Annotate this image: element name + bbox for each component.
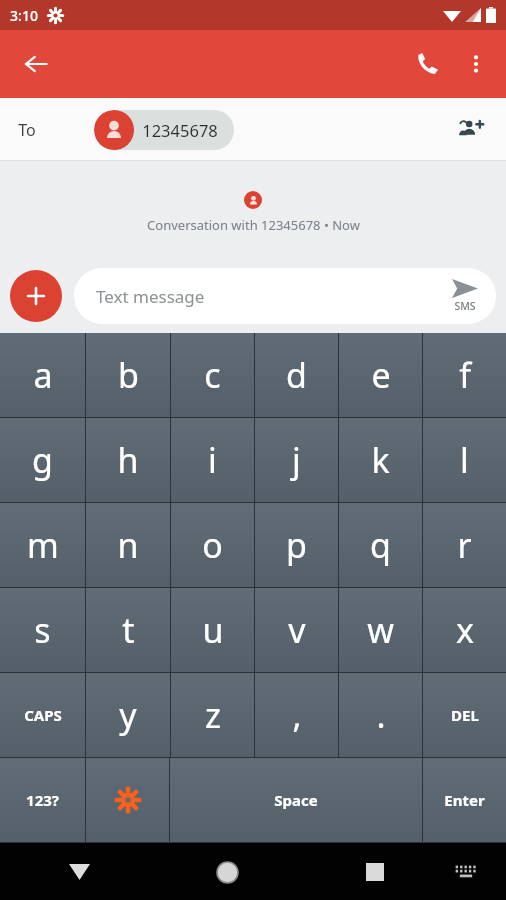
button[interactable]: .	[339, 673, 422, 757]
button[interactable]: Home	[203, 848, 251, 896]
button[interactable]: Text message	[74, 268, 496, 324]
button[interactable]: f	[423, 333, 506, 417]
staticText: f	[459, 352, 471, 398]
button[interactable]: i	[171, 418, 254, 502]
button[interactable]: u	[171, 588, 254, 672]
staticText: CAPS	[24, 705, 62, 725]
staticText: a	[33, 352, 53, 398]
staticText: i	[208, 437, 217, 483]
staticText: y	[119, 692, 137, 738]
button[interactable]: ,	[255, 673, 338, 757]
staticText: b	[118, 352, 139, 398]
button[interactable]: v	[255, 588, 338, 672]
staticText: s	[34, 607, 51, 653]
staticText: n	[117, 522, 139, 568]
button[interactable]: 12345678	[94, 110, 234, 150]
button[interactable]: l	[423, 418, 506, 502]
staticText: u	[202, 607, 224, 653]
button[interactable]: k	[339, 418, 422, 502]
button[interactable]: n	[86, 503, 170, 587]
button[interactable]: More options	[452, 40, 500, 88]
staticText: 3:10	[10, 6, 38, 25]
button[interactable]: 123?	[0, 758, 85, 842]
button[interactable]: w	[339, 588, 422, 672]
button[interactable]: Keyboard settings	[86, 758, 169, 842]
staticText: DEL	[451, 705, 479, 725]
button[interactable]: Send SMS	[452, 279, 478, 313]
button[interactable]: t	[86, 588, 170, 672]
staticText: m	[27, 522, 59, 568]
staticText: p	[286, 522, 307, 568]
button[interactable]: c	[171, 333, 254, 417]
button[interactable]: CAPS	[0, 673, 85, 757]
staticText: SMS	[454, 299, 476, 313]
staticText: o	[202, 522, 223, 568]
staticText: c	[204, 352, 221, 398]
staticText: Conversation with 12345678 • Now	[147, 216, 360, 234]
staticText: Text message	[96, 285, 205, 308]
staticText: h	[117, 437, 139, 483]
button[interactable]: z	[171, 673, 254, 757]
button[interactable]: DEL	[423, 673, 506, 757]
button[interactable]: o	[171, 503, 254, 587]
button[interactable]: e	[339, 333, 422, 417]
staticText: t	[122, 607, 135, 653]
button[interactable]: q	[339, 503, 422, 587]
staticText: k	[371, 437, 390, 483]
staticText: 123?	[26, 790, 59, 810]
staticText: w	[367, 607, 394, 653]
staticText: .	[376, 692, 386, 738]
button[interactable]: x	[423, 588, 506, 672]
staticText: q	[370, 522, 391, 568]
staticText: x	[456, 607, 474, 653]
button[interactable]: h	[86, 418, 170, 502]
staticText: 12345678	[142, 119, 218, 141]
button[interactable]: Hide keyboard	[55, 848, 103, 896]
staticText: ,	[292, 692, 302, 738]
button[interactable]: g	[0, 418, 85, 502]
staticText: Enter	[444, 790, 485, 810]
button[interactable]: Add recipient	[448, 107, 494, 153]
staticText: l	[460, 437, 469, 483]
button[interactable]: Back	[12, 40, 60, 88]
staticText: z	[205, 692, 221, 738]
button[interactable]: Recent apps	[351, 848, 399, 896]
staticText: Space	[274, 790, 318, 810]
button[interactable]: a	[0, 333, 85, 417]
staticText: j	[292, 437, 301, 483]
staticText: d	[286, 352, 307, 398]
button[interactable]: s	[0, 588, 85, 672]
staticText: r	[457, 522, 472, 568]
button[interactable]: m	[0, 503, 85, 587]
button[interactable]: j	[255, 418, 338, 502]
staticText: g	[32, 437, 53, 483]
staticText: To	[18, 119, 36, 141]
button[interactable]: d	[255, 333, 338, 417]
button[interactable]: Space	[170, 758, 422, 842]
button[interactable]: r	[423, 503, 506, 587]
button[interactable]: y	[86, 673, 170, 757]
button[interactable]: Enter	[423, 758, 506, 842]
staticText: e	[371, 352, 391, 398]
staticText: v	[288, 607, 306, 653]
button[interactable]: b	[86, 333, 170, 417]
button[interactable]: Switch keyboard	[444, 850, 488, 894]
button[interactable]: Call	[404, 40, 452, 88]
button[interactable]: Add attachment	[10, 270, 62, 322]
button[interactable]: p	[255, 503, 338, 587]
